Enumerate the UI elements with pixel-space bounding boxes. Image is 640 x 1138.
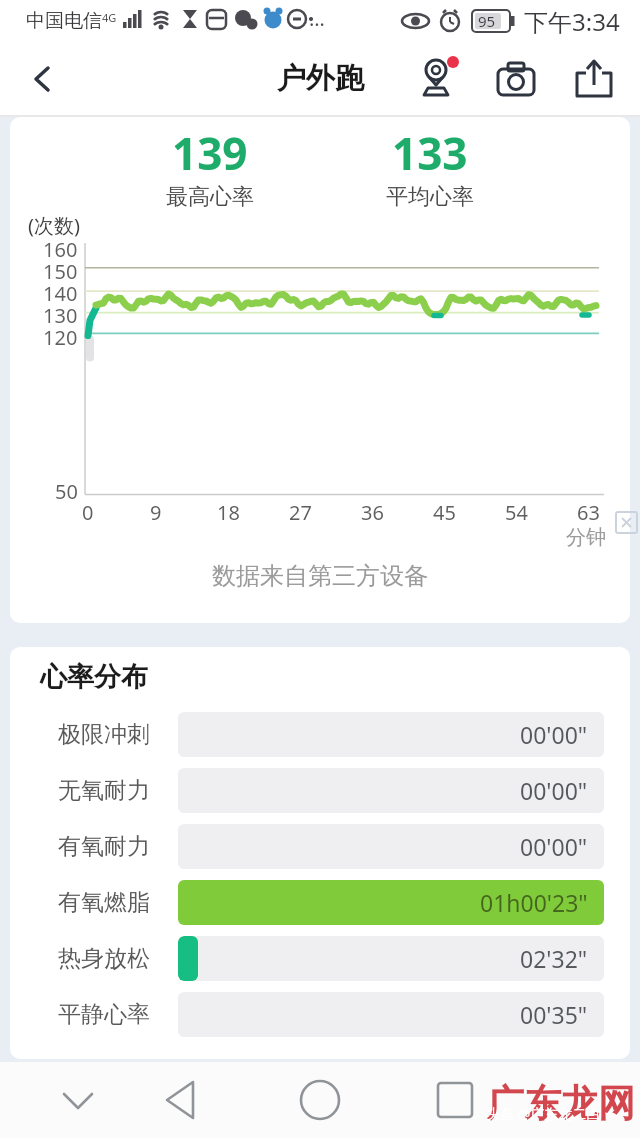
staticText: 心率分布: [40, 660, 148, 694]
button[interactable]: [30, 66, 56, 92]
staticText: 中国电信: [26, 9, 102, 33]
button[interactable]: [298, 1078, 342, 1122]
button[interactable]: 热身放松: [40, 936, 604, 981]
staticText: 下午3:34: [524, 5, 620, 38]
staticText: (次数): [28, 212, 80, 239]
button[interactable]: 平静心率: [40, 992, 604, 1037]
staticText: 150: [43, 258, 78, 285]
staticText: 头条 @广东龙二白: [486, 1104, 601, 1123]
staticText: 分钟: [566, 525, 606, 550]
staticText: 27: [289, 499, 312, 526]
button[interactable]: [161, 1078, 205, 1122]
staticText: 广东龙网: [487, 1080, 635, 1127]
staticText: 95: [478, 11, 496, 31]
staticText: 139: [172, 123, 248, 183]
staticText: 极限冲刺: [58, 720, 150, 749]
staticText: 有氧燃脂: [58, 888, 150, 917]
staticText: 133: [392, 123, 468, 183]
staticText: 130: [43, 302, 78, 329]
staticText: 63: [577, 499, 600, 526]
staticText: 数据来自第三方设备: [212, 561, 428, 591]
staticText: 02'32": [520, 943, 588, 974]
staticText: 140: [43, 280, 78, 307]
button[interactable]: [574, 59, 614, 99]
staticText: …: [309, 5, 325, 32]
staticText: 00'00": [520, 719, 588, 750]
staticText: 0: [82, 499, 94, 526]
button[interactable]: [416, 57, 460, 101]
button[interactable]: [433, 1078, 477, 1122]
button[interactable]: [496, 59, 536, 99]
staticText: 00'35": [520, 999, 588, 1030]
staticText: 36: [361, 499, 384, 526]
staticText: 户外跑: [277, 60, 364, 97]
staticText: 45: [433, 499, 456, 526]
staticText: 最高心率: [166, 183, 254, 211]
button[interactable]: 有氧燃脂: [40, 880, 604, 925]
staticText: 54: [505, 499, 528, 526]
staticText: 18: [217, 499, 240, 526]
staticText: 00'00": [520, 831, 588, 862]
staticText: 00'00": [520, 775, 588, 806]
button[interactable]: 有氧耐力: [40, 824, 604, 869]
staticText: 01h00'23": [480, 887, 588, 918]
staticText: 无氧耐力: [58, 776, 150, 805]
button[interactable]: [56, 1078, 100, 1122]
button[interactable]: 极限冲刺: [40, 712, 604, 757]
staticText: 160: [43, 236, 78, 263]
staticText: 有氧耐力: [58, 832, 150, 861]
staticText: 热身放松: [58, 944, 150, 973]
button[interactable]: 无氧耐力: [40, 768, 604, 813]
staticText: 9: [150, 499, 162, 526]
staticText: 50: [55, 478, 78, 505]
staticText: 平静心率: [58, 1000, 150, 1029]
staticText: 平均心率: [386, 183, 474, 211]
button[interactable]: [616, 512, 638, 534]
staticText: 4G: [102, 10, 117, 25]
staticText: 120: [43, 324, 78, 351]
